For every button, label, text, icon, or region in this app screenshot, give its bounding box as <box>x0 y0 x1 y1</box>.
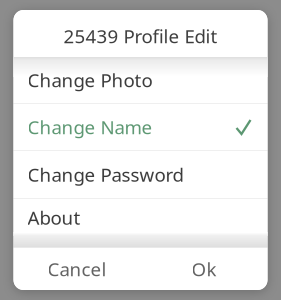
button[interactable]: Ok <box>140 248 267 290</box>
staticText: Ok <box>191 257 216 281</box>
staticText: Change Password <box>27 162 183 187</box>
button[interactable]: Change Photo <box>13 57 267 103</box>
staticText: Cancel <box>47 257 106 281</box>
button[interactable]: Change Password <box>13 151 267 198</box>
button[interactable]: Change Name <box>13 104 267 150</box>
staticText: Change Name <box>27 115 152 139</box>
button[interactable]: Cancel <box>13 248 140 290</box>
button[interactable]: About <box>13 199 267 236</box>
staticText: About <box>27 205 80 230</box>
staticText: 25439 Profile Edit <box>63 24 217 48</box>
staticText: Change Photo <box>27 68 152 92</box>
